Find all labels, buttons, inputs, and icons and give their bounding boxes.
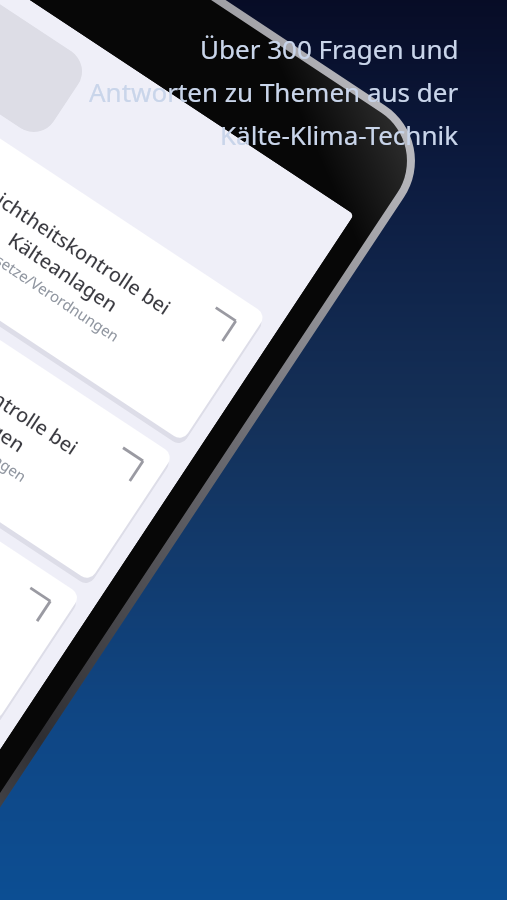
button[interactable]: Über 300 Fragen und Antworten zu Themen …	[0, 0, 507, 900]
